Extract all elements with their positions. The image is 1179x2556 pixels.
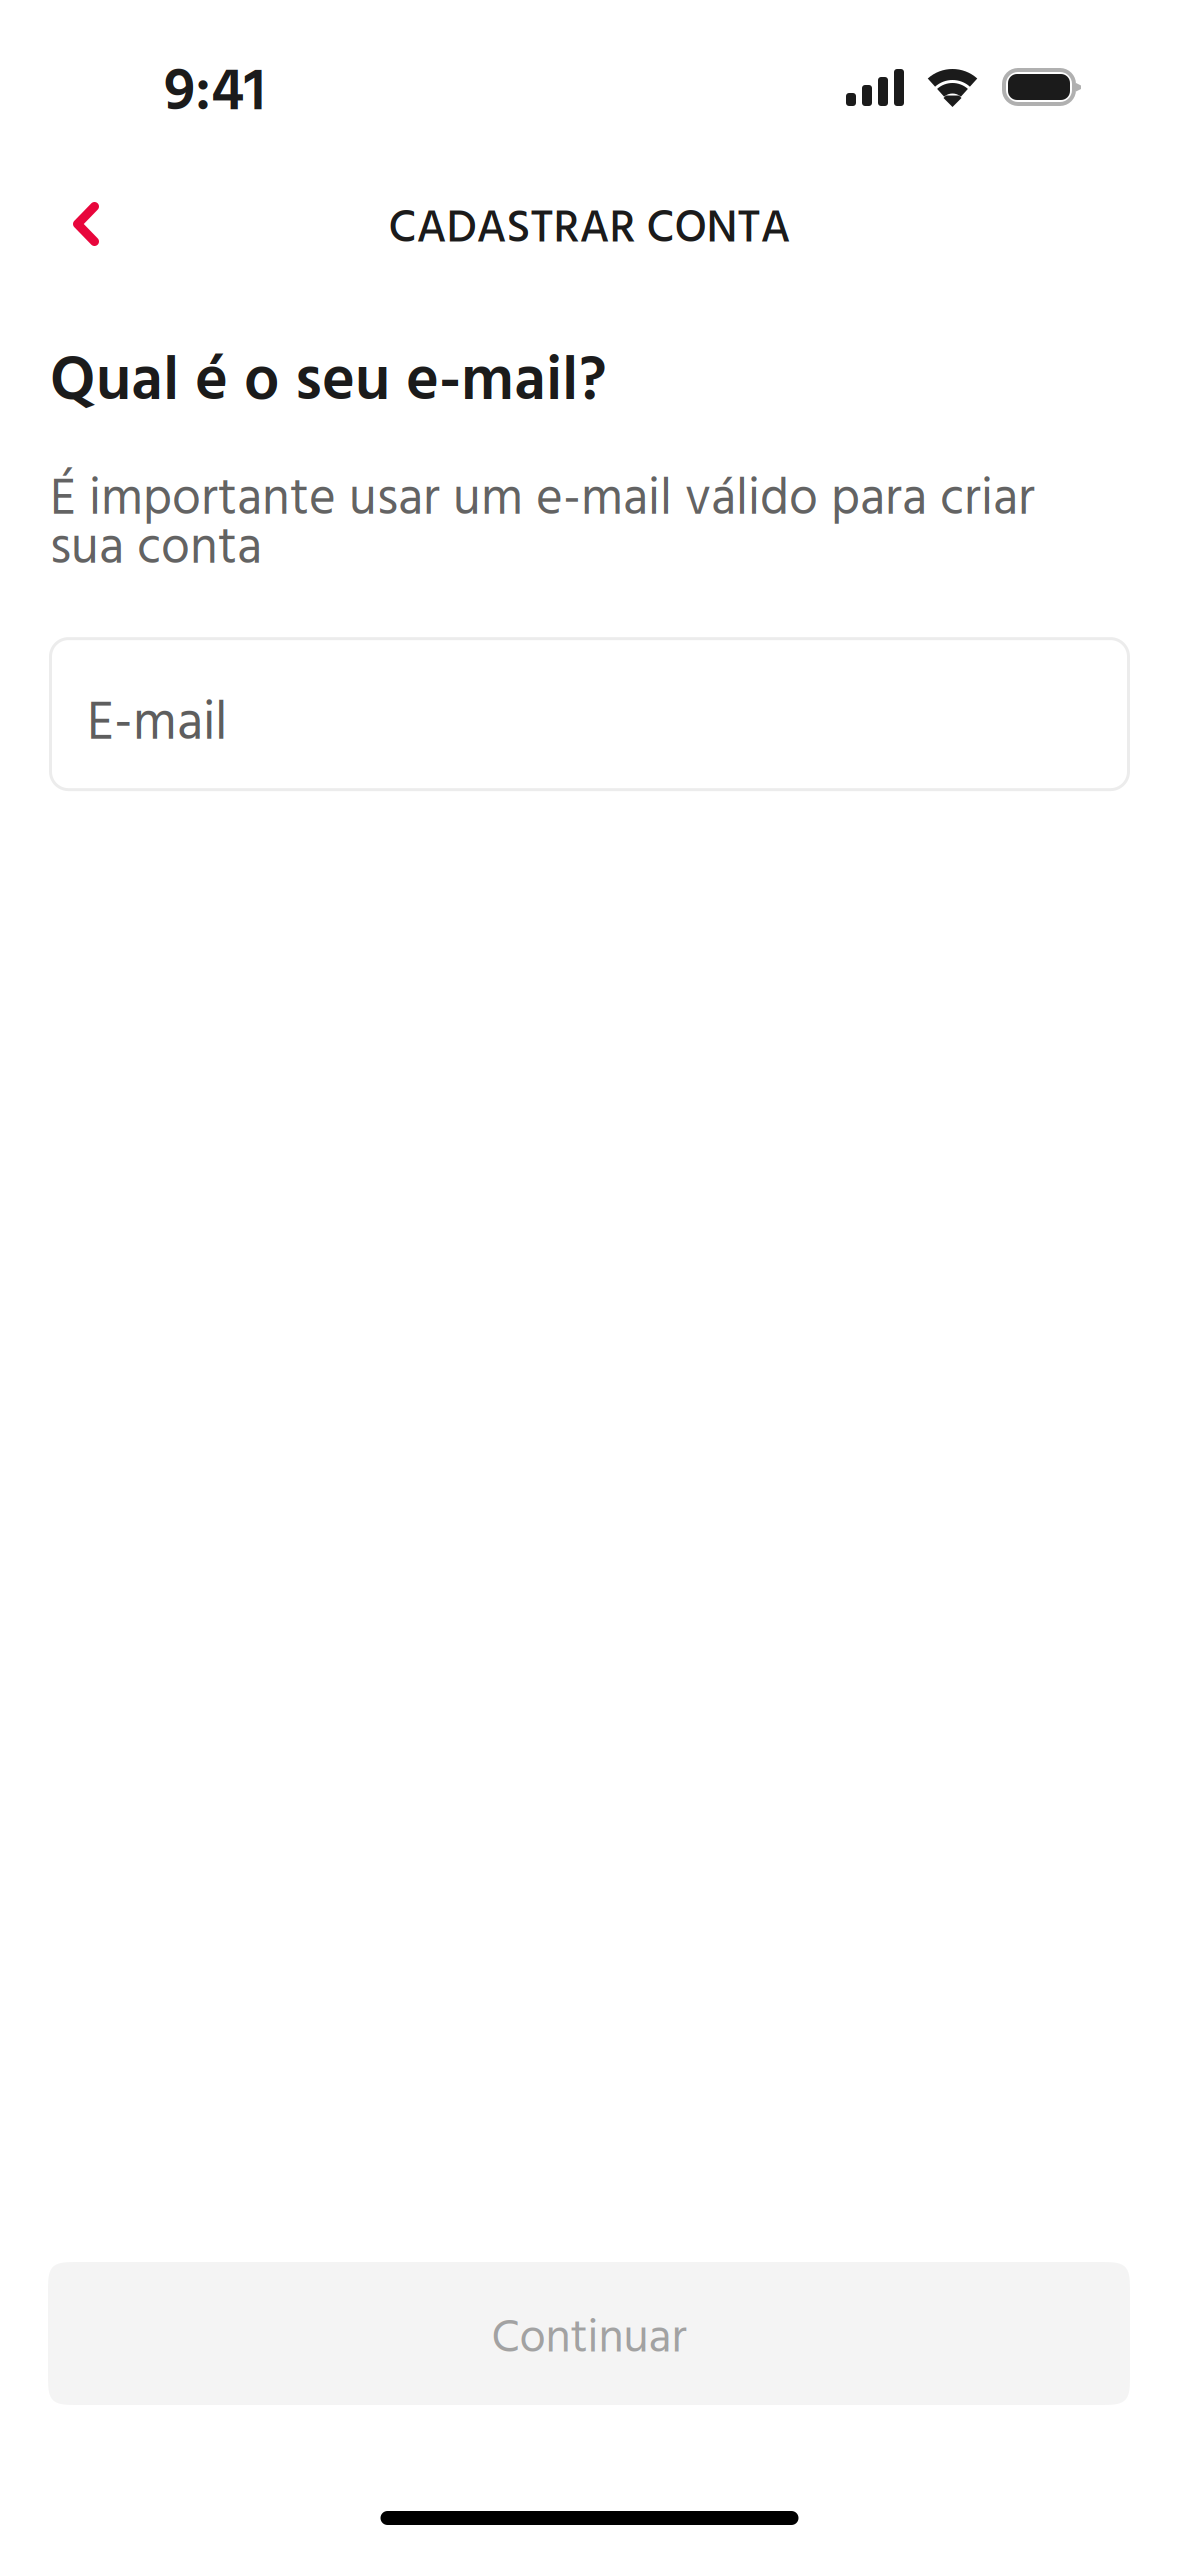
button[interactable]: E-mail (49, 637, 1130, 791)
button[interactable]: Continuar (48, 2262, 1130, 2405)
staticText: É importante usar um e-mail válido para … (50, 476, 1035, 574)
staticText: Continuar (491, 2302, 686, 2377)
staticText: 9:41 (164, 46, 265, 142)
staticText: CADASTRAR CONTA (388, 193, 790, 266)
button[interactable]: Voltar (31, 169, 141, 279)
staticText: Qual é o seu e-mail? (50, 333, 607, 433)
staticText: E-mail (87, 682, 227, 768)
